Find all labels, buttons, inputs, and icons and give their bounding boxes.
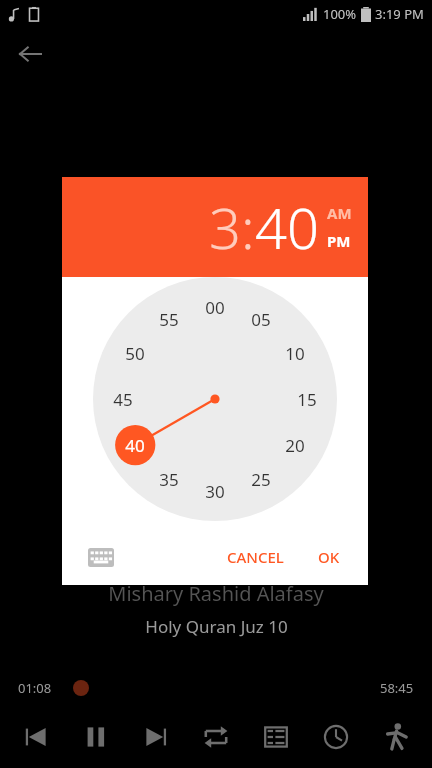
- button[interactable]: Next: [132, 713, 180, 761]
- staticText: 01:08: [18, 679, 52, 697]
- staticText: 20: [285, 434, 305, 457]
- staticText: Holy Quran Juz 10: [145, 615, 288, 638]
- button[interactable]: 45: [105, 381, 141, 417]
- staticText: AM: [327, 203, 352, 223]
- button[interactable]: CANCEL: [217, 539, 294, 575]
- staticText: 05: [251, 308, 271, 331]
- staticText: 40: [125, 434, 145, 457]
- staticText: 40: [255, 189, 319, 265]
- button[interactable]: 3: [209, 189, 241, 265]
- staticText: 50: [125, 342, 145, 365]
- button[interactable]: 00: [197, 289, 233, 325]
- staticText: PM: [327, 231, 351, 251]
- button[interactable]: 30: [197, 473, 233, 509]
- staticText: 3:19 PM: [375, 5, 424, 23]
- staticText: 55: [159, 308, 179, 331]
- button[interactable]: AM: [327, 201, 352, 225]
- staticText: 100%: [323, 5, 357, 23]
- button[interactable]: Timer: [312, 713, 360, 761]
- staticText: CANCEL: [227, 547, 284, 567]
- staticText: 3: [209, 189, 241, 265]
- button[interactable]: Repeat: [192, 713, 240, 761]
- staticText: 10: [285, 342, 305, 365]
- button[interactable]: Back: [10, 34, 50, 74]
- button[interactable]: 40: [117, 427, 153, 463]
- staticText: :: [241, 189, 255, 265]
- staticText: 00: [205, 296, 225, 319]
- button[interactable]: 40: [255, 189, 319, 265]
- button[interactable]: 05: [243, 301, 279, 337]
- button[interactable]: Pause: [72, 713, 120, 761]
- button[interactable]: OK: [308, 539, 350, 575]
- button[interactable]: 10: [277, 335, 313, 371]
- button[interactable]: Switch to keyboard input: [84, 540, 118, 574]
- button[interactable]: 55: [151, 301, 187, 337]
- staticText: 45: [113, 388, 133, 411]
- staticText: 35: [159, 468, 179, 491]
- button[interactable]: Playlist: [252, 713, 300, 761]
- button[interactable]: Walk: [372, 713, 420, 761]
- button[interactable]: 25: [243, 461, 279, 497]
- button[interactable]: 15: [289, 381, 325, 417]
- button[interactable]: Previous: [12, 713, 60, 761]
- button[interactable]: 50: [117, 335, 153, 371]
- staticText: 15: [297, 388, 317, 411]
- button[interactable]: 35: [151, 461, 187, 497]
- button[interactable]: 20: [277, 427, 313, 463]
- button[interactable]: PM: [327, 229, 351, 253]
- staticText: 30: [205, 480, 225, 503]
- staticText: 58:45: [380, 679, 414, 697]
- staticText: Mishary Rashid Alafasy: [108, 580, 324, 607]
- staticText: 25: [251, 468, 271, 491]
- staticText: OK: [318, 547, 340, 567]
